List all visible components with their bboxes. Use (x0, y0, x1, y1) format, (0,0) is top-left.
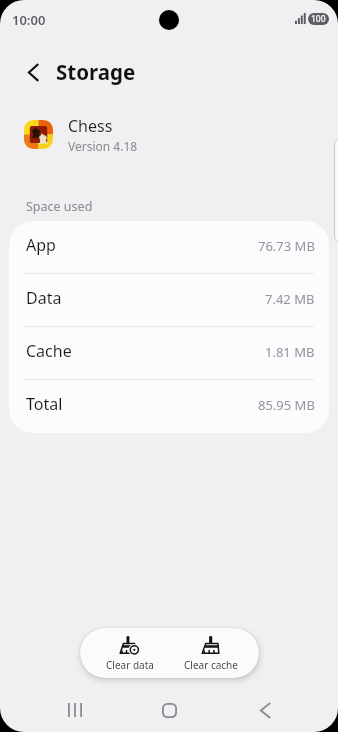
staticText: Total (26, 393, 63, 415)
button[interactable]: Cache (9, 327, 329, 380)
staticText: 7.42 MB (265, 290, 315, 308)
button[interactable]: Clear cache (170, 628, 251, 678)
staticText: Cache (26, 340, 72, 362)
button[interactable]: Navigate up (13, 52, 53, 92)
button[interactable]: Total (9, 380, 329, 433)
staticText: Data (26, 287, 62, 309)
button[interactable]: App (9, 221, 329, 274)
staticText: 1.81 MB (265, 343, 315, 361)
button[interactable]: Home (145, 686, 193, 732)
button[interactable]: Recent apps (51, 686, 99, 732)
staticText: 100 (311, 13, 326, 25)
staticText: 85.95 MB (258, 396, 315, 414)
staticText: Clear cache (184, 658, 238, 672)
button[interactable]: Data (9, 274, 329, 327)
button[interactable]: Back (241, 686, 289, 732)
staticText: Clear data (106, 658, 154, 672)
staticText: Space used (26, 198, 93, 215)
staticText: Version 4.18 (68, 138, 138, 154)
button[interactable]: Clear data (89, 628, 170, 678)
staticText: Storage (56, 58, 136, 86)
staticText: 76.73 MB (258, 237, 315, 255)
staticText: Chess (68, 115, 113, 137)
staticText: 10:00 (12, 11, 46, 29)
staticText: App (26, 234, 56, 256)
